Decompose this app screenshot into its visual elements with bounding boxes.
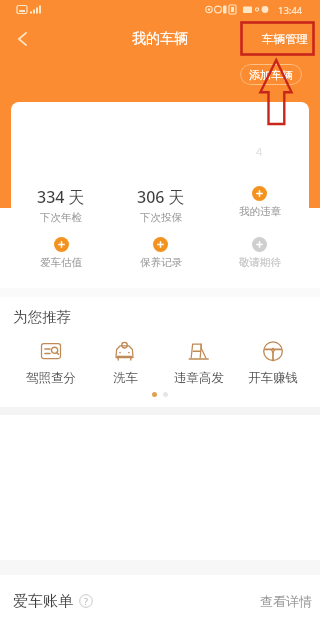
button[interactable]: 334 天 bbox=[11, 186, 111, 224]
staticText: 306 天 bbox=[137, 186, 185, 208]
staticText: 下次年检 bbox=[40, 211, 82, 224]
staticText: 查看详情 bbox=[260, 593, 312, 609]
button[interactable]: 车辆管理 bbox=[262, 32, 308, 46]
staticText: 驾照查分 bbox=[26, 370, 76, 386]
staticText: 我的车辆 bbox=[132, 30, 188, 48]
staticText: ? bbox=[84, 595, 88, 607]
button[interactable]: 开车赚钱 bbox=[236, 340, 310, 386]
staticText: 保养记录 bbox=[140, 256, 182, 269]
button[interactable]: 306 天 bbox=[111, 186, 210, 224]
button[interactable]: 添加车辆 bbox=[240, 64, 302, 85]
button[interactable]: 保养记录 bbox=[111, 237, 210, 269]
button[interactable]: 敬请期待 bbox=[210, 237, 309, 269]
button[interactable]: 违章高发 bbox=[162, 340, 236, 386]
staticText: 下次投保 bbox=[140, 211, 182, 224]
staticText: 违章高发 bbox=[174, 370, 224, 386]
button[interactable]: 洗车 bbox=[88, 340, 162, 386]
staticText: 334 天 bbox=[37, 186, 85, 208]
staticText: 车辆管理 bbox=[262, 32, 308, 46]
button[interactable]: Back bbox=[3, 20, 41, 58]
staticText: 洗车 bbox=[113, 370, 138, 386]
staticText: 爱车估值 bbox=[40, 256, 82, 269]
button[interactable]: 查看详情 bbox=[260, 593, 312, 609]
staticText: 爱车账单 bbox=[13, 592, 73, 611]
staticText: 敬请期待 bbox=[239, 256, 281, 269]
button[interactable]: 我的违章 bbox=[210, 186, 309, 218]
staticText: 为您推荐 bbox=[13, 308, 71, 326]
staticText: 我的违章 bbox=[239, 205, 281, 218]
staticText: 4 bbox=[256, 144, 263, 159]
button[interactable]: 爱车估值 bbox=[11, 237, 111, 269]
staticText: 13:44 bbox=[278, 4, 303, 17]
button[interactable]: Help bbox=[79, 594, 93, 608]
staticText: 添加车辆 bbox=[249, 68, 293, 82]
button[interactable]: 驾照查分 bbox=[14, 340, 88, 386]
staticText: 开车赚钱 bbox=[248, 370, 298, 386]
